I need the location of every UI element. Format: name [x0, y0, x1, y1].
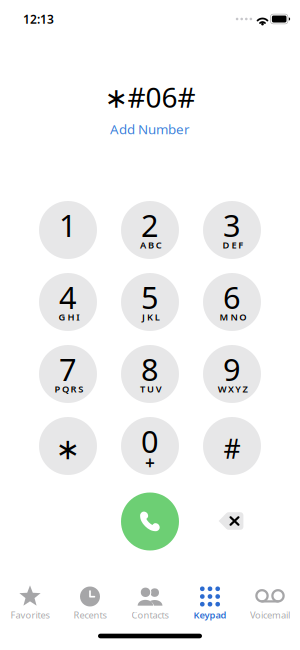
staticText: 1 [59, 205, 77, 245]
button[interactable]: 8 [121, 345, 179, 403]
staticText: 2 [141, 205, 159, 245]
staticText: GHI [59, 311, 79, 323]
staticText: 0 [141, 421, 159, 461]
button[interactable]: Recents [60, 583, 120, 623]
button[interactable]: Voicemail [240, 583, 300, 623]
button[interactable]: 9 [203, 345, 261, 403]
button[interactable]: 0 [121, 417, 179, 475]
staticText: 9 [223, 349, 241, 389]
staticText: 5 [141, 277, 159, 317]
button[interactable]: Add Number [90, 120, 210, 138]
button[interactable]: 7 [39, 345, 97, 403]
staticText: ∗ [55, 432, 80, 466]
staticText: 12:13 [23, 11, 54, 27]
staticText: # [223, 431, 240, 466]
staticText: 7 [59, 349, 77, 389]
staticText: Keypad [193, 609, 226, 621]
staticText: 4 [59, 277, 77, 317]
button[interactable]: 2 [121, 201, 179, 259]
button[interactable]: Keypad [180, 583, 240, 623]
button[interactable]: Contacts [120, 583, 180, 623]
button[interactable]: 1 [39, 201, 97, 259]
button[interactable]: Delete [202, 492, 260, 550]
button[interactable]: Call [121, 492, 179, 550]
button[interactable]: # [203, 417, 261, 475]
staticText: + [145, 451, 155, 474]
button[interactable]: 6 [203, 273, 261, 331]
staticText: Add Number [110, 120, 190, 138]
staticText: MNO [220, 311, 246, 323]
staticText: JKL [142, 311, 160, 323]
staticText: Contacts [131, 609, 168, 621]
staticText: PQRS [54, 383, 83, 395]
staticText: ABC [140, 239, 162, 251]
staticText: Recents [73, 609, 106, 621]
staticText: Favorites [10, 609, 49, 621]
button[interactable]: 4 [39, 273, 97, 331]
button[interactable]: 5 [121, 273, 179, 331]
staticText: ∗#06# [104, 78, 195, 116]
staticText: WXYZ [218, 383, 248, 395]
staticText: Voicemail [250, 609, 290, 621]
staticText: 8 [141, 349, 159, 389]
staticText: DEF [223, 239, 243, 251]
staticText: 3 [223, 205, 241, 245]
staticText: TUV [140, 383, 162, 395]
button[interactable]: 3 [203, 201, 261, 259]
button[interactable]: ∗ [39, 417, 97, 475]
staticText: 6 [223, 277, 241, 317]
button[interactable]: Favorites [0, 583, 60, 623]
